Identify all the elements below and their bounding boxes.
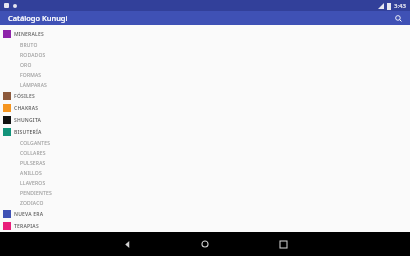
staticText: CHAKRAS	[14, 105, 39, 112]
staticText: COLLARES	[20, 150, 46, 157]
button[interactable]: LÁMPARAS	[0, 80, 410, 90]
staticText: ZODIACO	[20, 200, 44, 207]
button[interactable]: PENDIENTES	[0, 188, 410, 198]
button[interactable]: SHUNGITA	[0, 114, 410, 126]
staticText: NUEVA ERA	[14, 211, 44, 218]
button[interactable]: ANILLOS	[0, 168, 410, 178]
button[interactable]: TERAPIAS	[0, 220, 410, 232]
button[interactable]: COLGANTES	[0, 138, 410, 148]
staticText: LLAVEROS	[20, 180, 46, 187]
staticText: MINERALES	[14, 31, 44, 38]
button[interactable]: Search	[392, 12, 404, 24]
staticText: BRUTO	[20, 42, 38, 49]
staticText: RODADOS	[20, 52, 46, 59]
staticText: 3:43	[394, 2, 406, 10]
button[interactable]: BISUTERÍA	[0, 126, 410, 138]
staticText: ORO	[20, 62, 32, 69]
button[interactable]: COLLARES	[0, 148, 410, 158]
staticText: PULSERAS	[20, 160, 46, 167]
button[interactable]: LLAVEROS	[0, 178, 410, 188]
button[interactable]: Home	[185, 232, 225, 256]
staticText: FÓSILES	[14, 93, 35, 100]
button[interactable]: NUEVA ERA	[0, 208, 410, 220]
button[interactable]: FÓSILES	[0, 90, 410, 102]
staticText: PENDIENTES	[20, 190, 52, 197]
button[interactable]: RODADOS	[0, 50, 410, 60]
staticText: BISUTERÍA	[14, 129, 42, 136]
button[interactable]: FORMAS	[0, 70, 410, 80]
staticText: SHUNGITA	[14, 117, 42, 124]
staticText: FORMAS	[20, 72, 42, 79]
button[interactable]: ORO	[0, 60, 410, 70]
staticText: COLGANTES	[20, 140, 51, 147]
staticText: TERAPIAS	[14, 223, 39, 230]
button[interactable]: Recent apps	[263, 232, 303, 256]
staticText: LÁMPARAS	[20, 82, 47, 89]
button[interactable]: MINERALES	[0, 28, 410, 40]
staticText: Catálogo Kunugi	[8, 13, 68, 23]
button[interactable]: PULSERAS	[0, 158, 410, 168]
button[interactable]: CHAKRAS	[0, 102, 410, 114]
button[interactable]: Back	[107, 232, 147, 256]
button[interactable]: ZODIACO	[0, 198, 410, 208]
button[interactable]: BRUTO	[0, 40, 410, 50]
staticText: ANILLOS	[20, 170, 42, 177]
